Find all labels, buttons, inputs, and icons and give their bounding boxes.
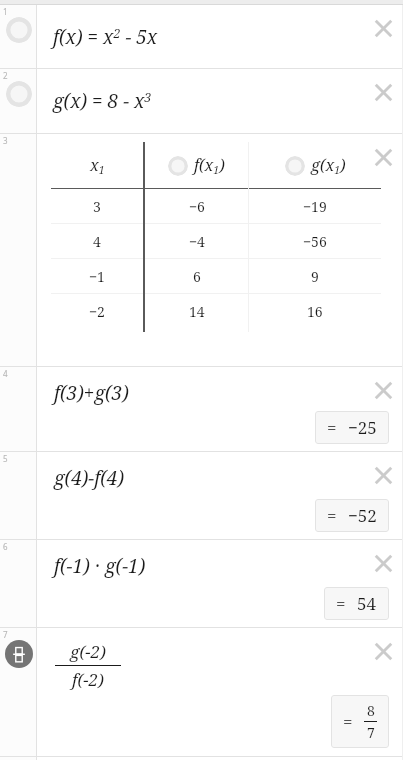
button[interactable]: f(x) = x2 − 5x bbox=[37, 5, 403, 68]
staticText: −56 bbox=[303, 232, 327, 251]
staticText: = bbox=[336, 592, 346, 615]
staticText: 8 bbox=[367, 701, 375, 720]
staticText: 5 bbox=[3, 453, 8, 464]
button[interactable]: f(3)+g(3) bbox=[37, 367, 403, 451]
staticText: 3 bbox=[93, 197, 101, 216]
staticText: = bbox=[327, 504, 337, 527]
staticText: = bbox=[343, 710, 353, 733]
button[interactable]: = bbox=[324, 587, 389, 620]
staticText: −19 bbox=[303, 197, 327, 216]
staticText: 54 bbox=[357, 592, 377, 615]
staticText: g(x1) bbox=[311, 154, 346, 177]
staticText: g(x) = 8 − x3 bbox=[53, 88, 152, 114]
staticText: 7 bbox=[3, 629, 8, 640]
staticText: 6 bbox=[193, 267, 201, 286]
staticText: 4 bbox=[3, 368, 8, 379]
button[interactable]: Delete row bbox=[366, 75, 400, 109]
button[interactable]: f(−1) · g(−1) bbox=[37, 540, 403, 627]
staticText: 6 bbox=[3, 541, 8, 552]
staticText: 16 bbox=[307, 302, 323, 321]
button[interactable]: Output options bbox=[5, 640, 33, 668]
staticText: 14 bbox=[189, 302, 205, 321]
staticText: g(4)−f(4) bbox=[54, 465, 125, 491]
staticText: 2 bbox=[3, 70, 8, 81]
staticText: 3 bbox=[3, 135, 8, 146]
button[interactable]: g(4)−f(4) bbox=[37, 452, 403, 539]
button[interactable]: Delete row bbox=[366, 140, 400, 174]
staticText: −6 bbox=[189, 197, 205, 216]
button[interactable]: Toggle visibility bbox=[6, 81, 32, 107]
button[interactable]: g(−2) bbox=[37, 628, 403, 756]
staticText: f(−1) · g(−1) bbox=[54, 553, 146, 579]
button[interactable]: = bbox=[315, 499, 389, 532]
button[interactable]: = bbox=[315, 411, 389, 444]
staticText: g(−2) bbox=[70, 640, 106, 663]
staticText: 7 bbox=[367, 723, 375, 742]
staticText: −25 bbox=[348, 416, 377, 439]
staticText: f(x1) bbox=[194, 154, 225, 177]
button[interactable]: Toggle visibility bbox=[285, 156, 305, 176]
button[interactable]: Delete row bbox=[366, 546, 400, 580]
staticText: f(−2) bbox=[72, 668, 104, 691]
button[interactable]: Delete row bbox=[366, 373, 400, 407]
staticText: 9 bbox=[311, 267, 319, 286]
staticText: −52 bbox=[348, 504, 377, 527]
button[interactable]: = bbox=[331, 695, 389, 748]
staticText: −1 bbox=[89, 267, 105, 286]
staticText: = bbox=[327, 416, 337, 439]
button[interactable]: Toggle visibility bbox=[6, 17, 32, 43]
staticText: 4 bbox=[93, 232, 101, 251]
staticText: f(3)+g(3) bbox=[54, 380, 129, 406]
button[interactable]: Toggle visibility bbox=[168, 156, 188, 176]
button[interactable]: g(x) = 8 − x3 bbox=[37, 69, 403, 133]
staticText: −2 bbox=[89, 302, 105, 321]
button[interactable]: Delete row bbox=[366, 458, 400, 492]
staticText: −4 bbox=[189, 232, 205, 251]
staticText: x1 bbox=[90, 154, 105, 177]
button[interactable]: x1 bbox=[37, 134, 403, 366]
button[interactable]: Delete row bbox=[366, 634, 400, 668]
staticText: 1 bbox=[3, 6, 8, 17]
staticText: f(x) = x2 − 5x bbox=[53, 24, 158, 50]
button[interactable]: Delete row bbox=[366, 11, 400, 45]
